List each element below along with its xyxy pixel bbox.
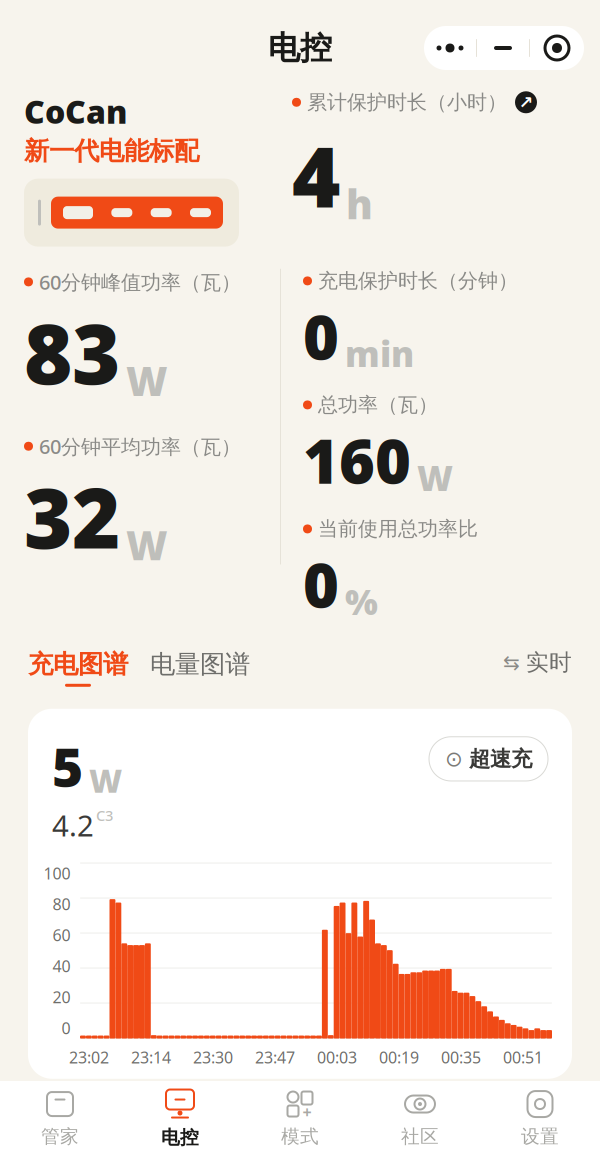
button[interactable]: More <box>424 26 476 70</box>
staticText: 0 <box>303 295 339 377</box>
staticText: 40 <box>52 955 70 977</box>
staticText: 100 <box>43 862 70 884</box>
staticText: 00:35 <box>441 1046 481 1068</box>
staticText: 社区 <box>401 1125 439 1148</box>
staticText: W <box>126 518 168 571</box>
staticText: 管家 <box>41 1125 79 1148</box>
staticText: 设置 <box>521 1125 559 1148</box>
staticText: 23:30 <box>193 1046 233 1068</box>
staticText: 模式 <box>281 1125 319 1148</box>
staticText: 00:03 <box>317 1046 357 1068</box>
button[interactable]: 充电图谱 <box>28 649 128 687</box>
staticText: ⇆ <box>503 651 520 674</box>
staticText: 累计保护时长（小时） <box>307 90 507 115</box>
button[interactable]: ⇆ <box>503 649 572 676</box>
staticText: 电控 <box>268 28 332 68</box>
staticText: 00:51 <box>503 1046 543 1068</box>
staticText: min <box>345 331 414 377</box>
staticText: 00:19 <box>379 1046 419 1068</box>
staticText: 电控 <box>161 1126 199 1149</box>
staticText: W <box>89 759 122 802</box>
staticText: 超速充 <box>469 746 532 772</box>
staticText: CoCan <box>24 90 127 132</box>
staticText: 60分钟平均功率（瓦） <box>39 433 241 459</box>
button[interactable]: Minimize <box>477 26 529 70</box>
staticText: ↗ <box>518 92 533 112</box>
staticText: W <box>126 354 168 407</box>
staticText: 充电图谱 <box>28 649 128 680</box>
staticText: h <box>346 177 373 230</box>
staticText: 32 <box>24 461 120 571</box>
staticText: 总功率（瓦） <box>318 393 438 417</box>
staticText: 80 <box>52 893 70 915</box>
button[interactable]: 电量图谱 <box>128 649 250 680</box>
staticText: 5 <box>52 731 83 802</box>
staticText: 83 <box>24 297 120 407</box>
staticText: 60 <box>52 924 70 946</box>
button[interactable]: + <box>240 1080 360 1159</box>
staticText: 4 <box>292 121 340 230</box>
button[interactable]: Details <box>515 91 537 113</box>
staticText: 实时 <box>526 649 572 676</box>
button[interactable]: 管家 <box>0 1080 120 1159</box>
button[interactable]: 电控 <box>120 1079 240 1159</box>
staticText: + <box>302 1101 311 1123</box>
staticText: 4.2 <box>52 806 94 845</box>
button[interactable]: 社区 <box>360 1080 480 1159</box>
staticText: 60分钟峰值功率（瓦） <box>39 269 241 295</box>
button[interactable]: Close <box>530 26 584 70</box>
staticText: 当前使用总功率比 <box>318 517 478 541</box>
staticText: ⊙ <box>445 747 463 771</box>
staticText: 20 <box>52 986 70 1007</box>
staticText: C3 <box>96 806 113 825</box>
button[interactable]: ⊙ <box>429 737 548 781</box>
staticText: 新一代电能标配 <box>24 135 199 167</box>
staticText: 充电保护时长（分钟） <box>318 269 518 293</box>
staticText: 160 <box>303 419 411 501</box>
staticText: 23:02 <box>69 1046 109 1068</box>
staticText: 23:47 <box>255 1046 295 1068</box>
staticText: 电量图谱 <box>150 649 250 680</box>
staticText: 23:14 <box>131 1046 171 1068</box>
staticText: 0 <box>61 1017 70 1038</box>
staticText: 0 <box>303 543 339 625</box>
staticText: % <box>345 579 378 625</box>
staticText: W <box>417 455 453 501</box>
button[interactable]: 设置 <box>480 1080 600 1159</box>
